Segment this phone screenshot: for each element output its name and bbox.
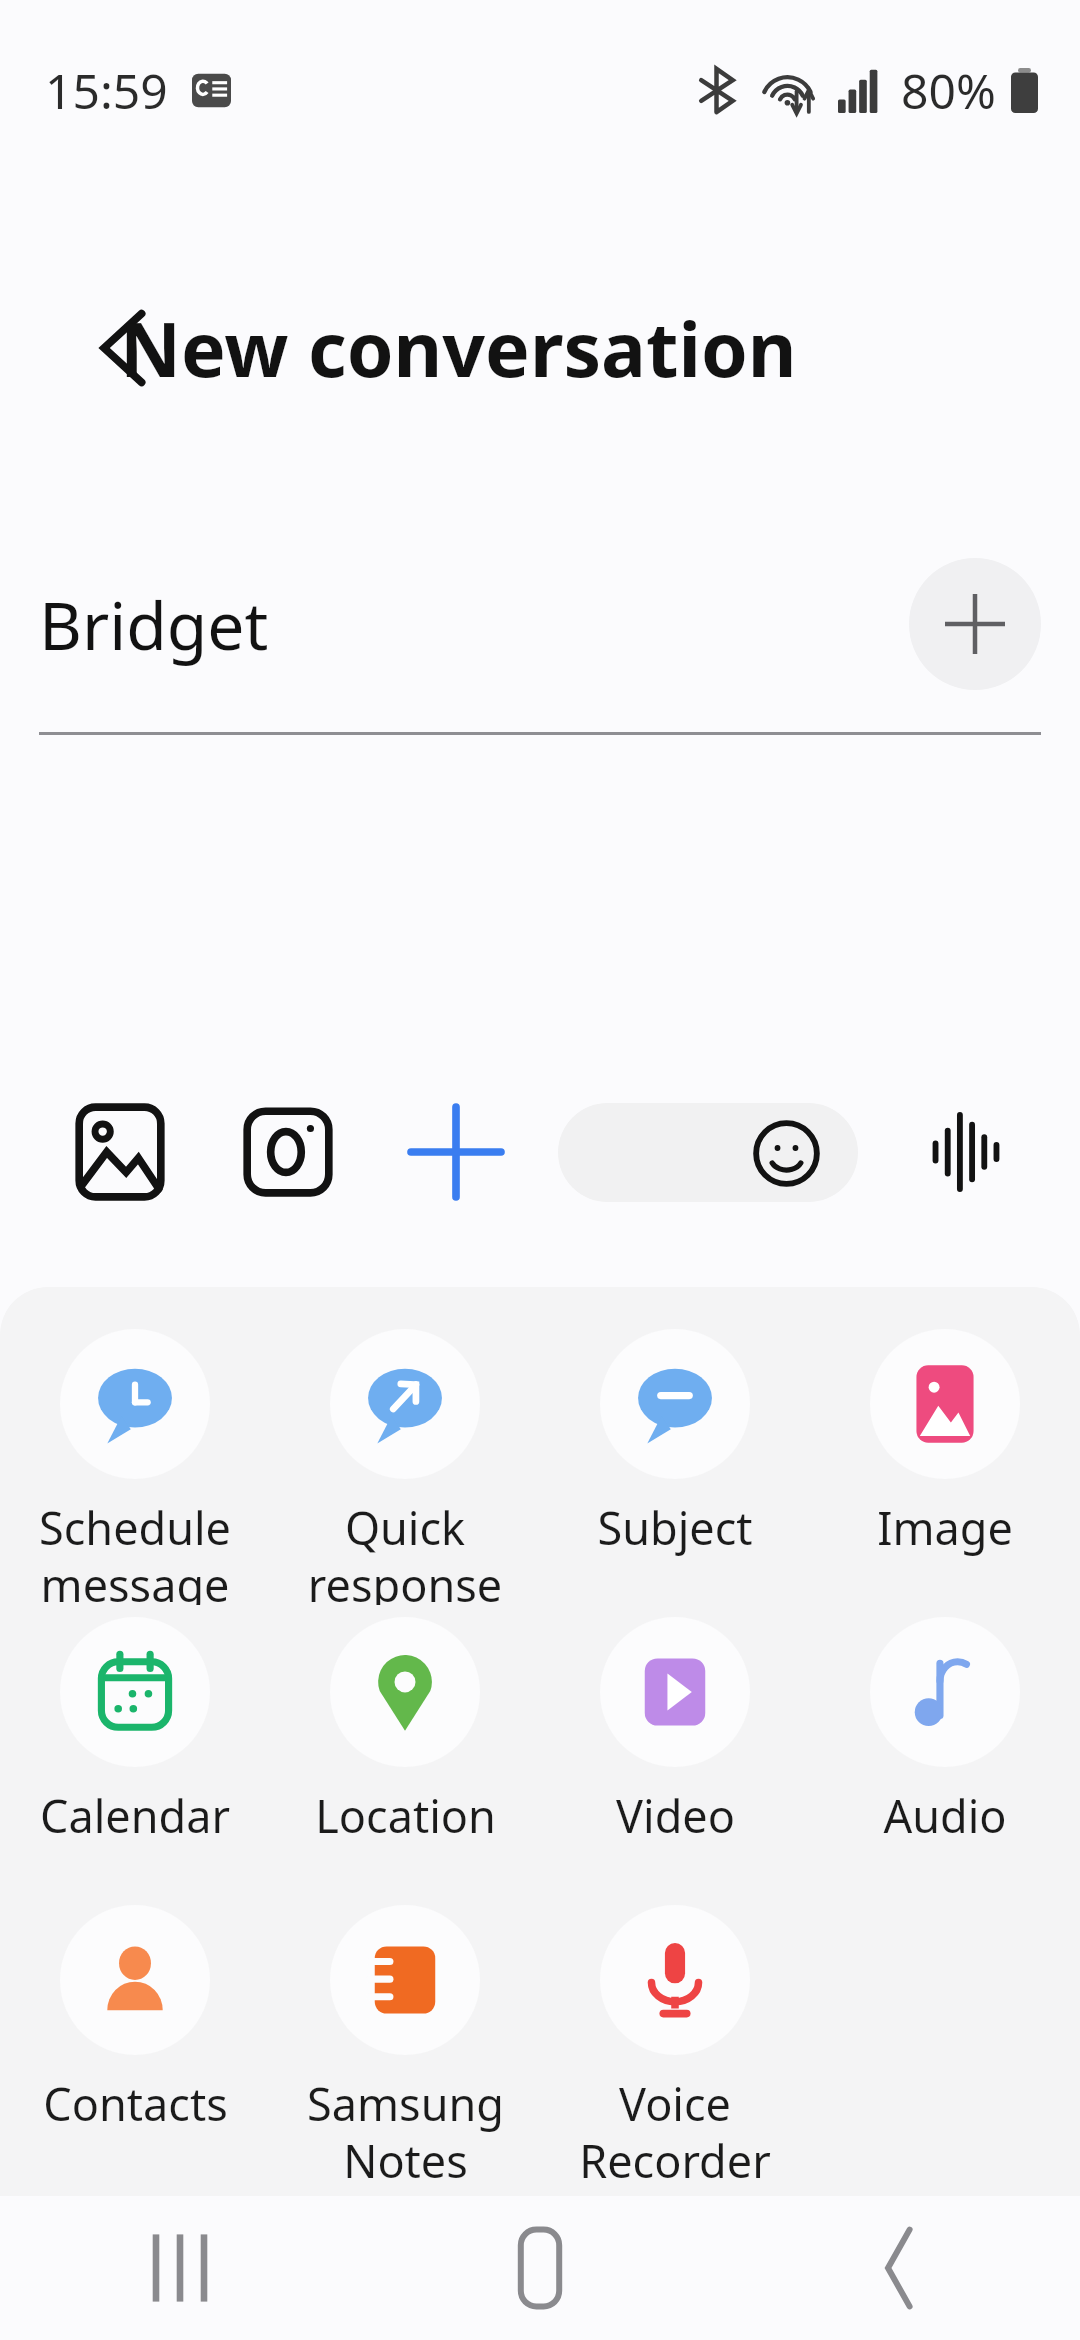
button[interactable]: Schedule message xyxy=(0,1317,270,1605)
staticText: Video xyxy=(616,1785,735,1846)
button[interactable]: Recent apps xyxy=(0,2196,360,2340)
staticText: Image xyxy=(877,1497,1013,1558)
button[interactable]: Back xyxy=(18,240,234,456)
staticText: Calendar xyxy=(40,1785,230,1846)
staticText: Schedule message xyxy=(39,1497,231,1605)
button[interactable]: Home xyxy=(360,2196,720,2340)
button[interactable]: Quick response xyxy=(270,1317,540,1605)
button[interactable]: Emoji xyxy=(558,1103,858,1202)
button[interactable]: Subject xyxy=(540,1317,810,1605)
button[interactable]: Camera xyxy=(204,1068,372,1236)
button[interactable]: Image xyxy=(810,1317,1080,1605)
button[interactable]: Contacts xyxy=(0,1893,270,2181)
staticText: Quick response xyxy=(270,1497,540,1605)
button[interactable]: Voice message xyxy=(882,1068,1050,1236)
staticText: Bridget xyxy=(39,579,909,669)
staticText: Location xyxy=(315,1785,496,1846)
staticText: Contacts xyxy=(43,2073,228,2134)
button[interactable]: Voice Recorder xyxy=(540,1893,810,2181)
staticText: Samsung Notes xyxy=(307,2073,504,2181)
button[interactable]: Emoji xyxy=(744,1111,828,1195)
button[interactable]: Location xyxy=(270,1605,540,1893)
button[interactable]: Samsung Notes xyxy=(270,1893,540,2181)
button[interactable]: More options xyxy=(372,1068,540,1236)
staticText: Subject xyxy=(597,1497,753,1558)
staticText: Voice Recorder xyxy=(540,2073,810,2181)
button[interactable]: Back xyxy=(720,2196,1080,2340)
staticText: Audio xyxy=(883,1785,1007,1846)
button[interactable]: Add recipient xyxy=(909,558,1041,690)
staticText: 80% xyxy=(901,58,996,123)
button[interactable]: Gallery xyxy=(36,1068,204,1236)
button[interactable]: Audio xyxy=(810,1605,1080,1893)
staticText: New conversation xyxy=(120,297,797,399)
button[interactable]: Video xyxy=(540,1605,810,1893)
button[interactable]: Calendar xyxy=(0,1605,270,1893)
staticText: 15:59 xyxy=(45,58,168,123)
